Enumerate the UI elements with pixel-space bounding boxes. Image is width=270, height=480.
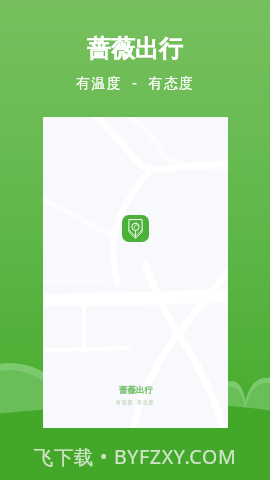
button[interactable]: 蔷薇出行 logo [122,215,149,242]
staticText: 有温度 有态度 [116,399,155,406]
staticText: 蔷薇出行 [87,34,183,64]
staticText: 有温度 - 有态度 [76,73,195,92]
staticText: 飞下载 • BYFZXY.COM [0,443,270,470]
staticText: 蔷薇出行 [119,385,153,396]
